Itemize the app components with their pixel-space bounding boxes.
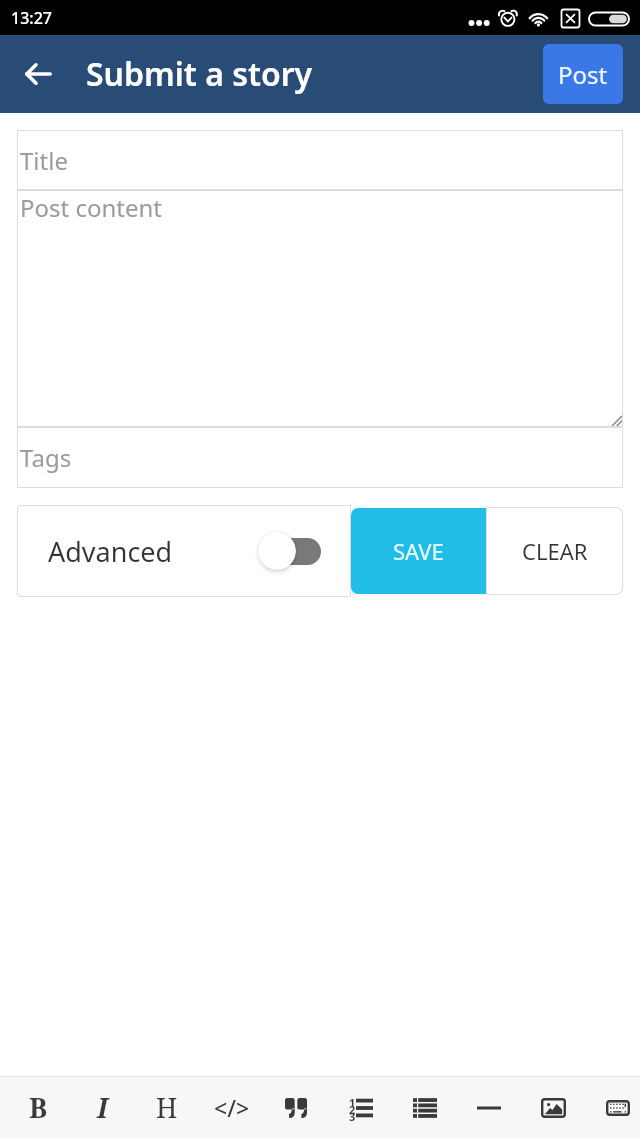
button[interactable]: Tags <box>17 427 623 488</box>
button[interactable]: Title <box>17 130 623 190</box>
button[interactable]: Quote <box>267 1077 324 1138</box>
button[interactable]: Code <box>203 1077 260 1138</box>
button[interactable]: Post <box>543 44 623 104</box>
staticText: 1 <box>349 1095 356 1107</box>
button[interactable]: Bulleted list <box>396 1077 453 1138</box>
staticText: Title <box>20 144 68 177</box>
staticText: SAVE <box>393 536 444 566</box>
staticText: Tags <box>20 441 72 474</box>
staticText: 2 <box>349 1102 356 1114</box>
staticText: B <box>29 1089 48 1126</box>
button[interactable]: Post content <box>17 190 623 427</box>
staticText: Post <box>558 58 608 91</box>
button[interactable]: Italic <box>74 1077 131 1138</box>
staticText: Advanced <box>48 533 173 570</box>
staticText: Post content <box>20 191 163 224</box>
staticText: I <box>97 1089 108 1126</box>
button[interactable]: Advanced <box>17 505 351 597</box>
button[interactable]: Advanced toggle <box>259 527 322 575</box>
staticText: H <box>156 1089 178 1126</box>
button[interactable]: Keyboard <box>589 1077 640 1138</box>
staticText: </> <box>214 1092 250 1123</box>
button[interactable]: Bold <box>10 1077 67 1138</box>
button[interactable]: Horizontal rule <box>460 1077 517 1138</box>
staticText: 3 <box>349 1109 356 1121</box>
button[interactable]: Back <box>10 46 66 102</box>
button[interactable]: Insert image <box>525 1077 582 1138</box>
staticText: CLEAR <box>522 536 588 566</box>
button[interactable]: Heading <box>138 1077 195 1138</box>
button[interactable]: SAVE <box>351 508 486 594</box>
button[interactable]: Numbered list <box>332 1077 389 1138</box>
staticText: 13:27 <box>11 7 52 29</box>
button[interactable]: CLEAR <box>486 507 623 595</box>
staticText: Submit a story <box>86 52 313 96</box>
